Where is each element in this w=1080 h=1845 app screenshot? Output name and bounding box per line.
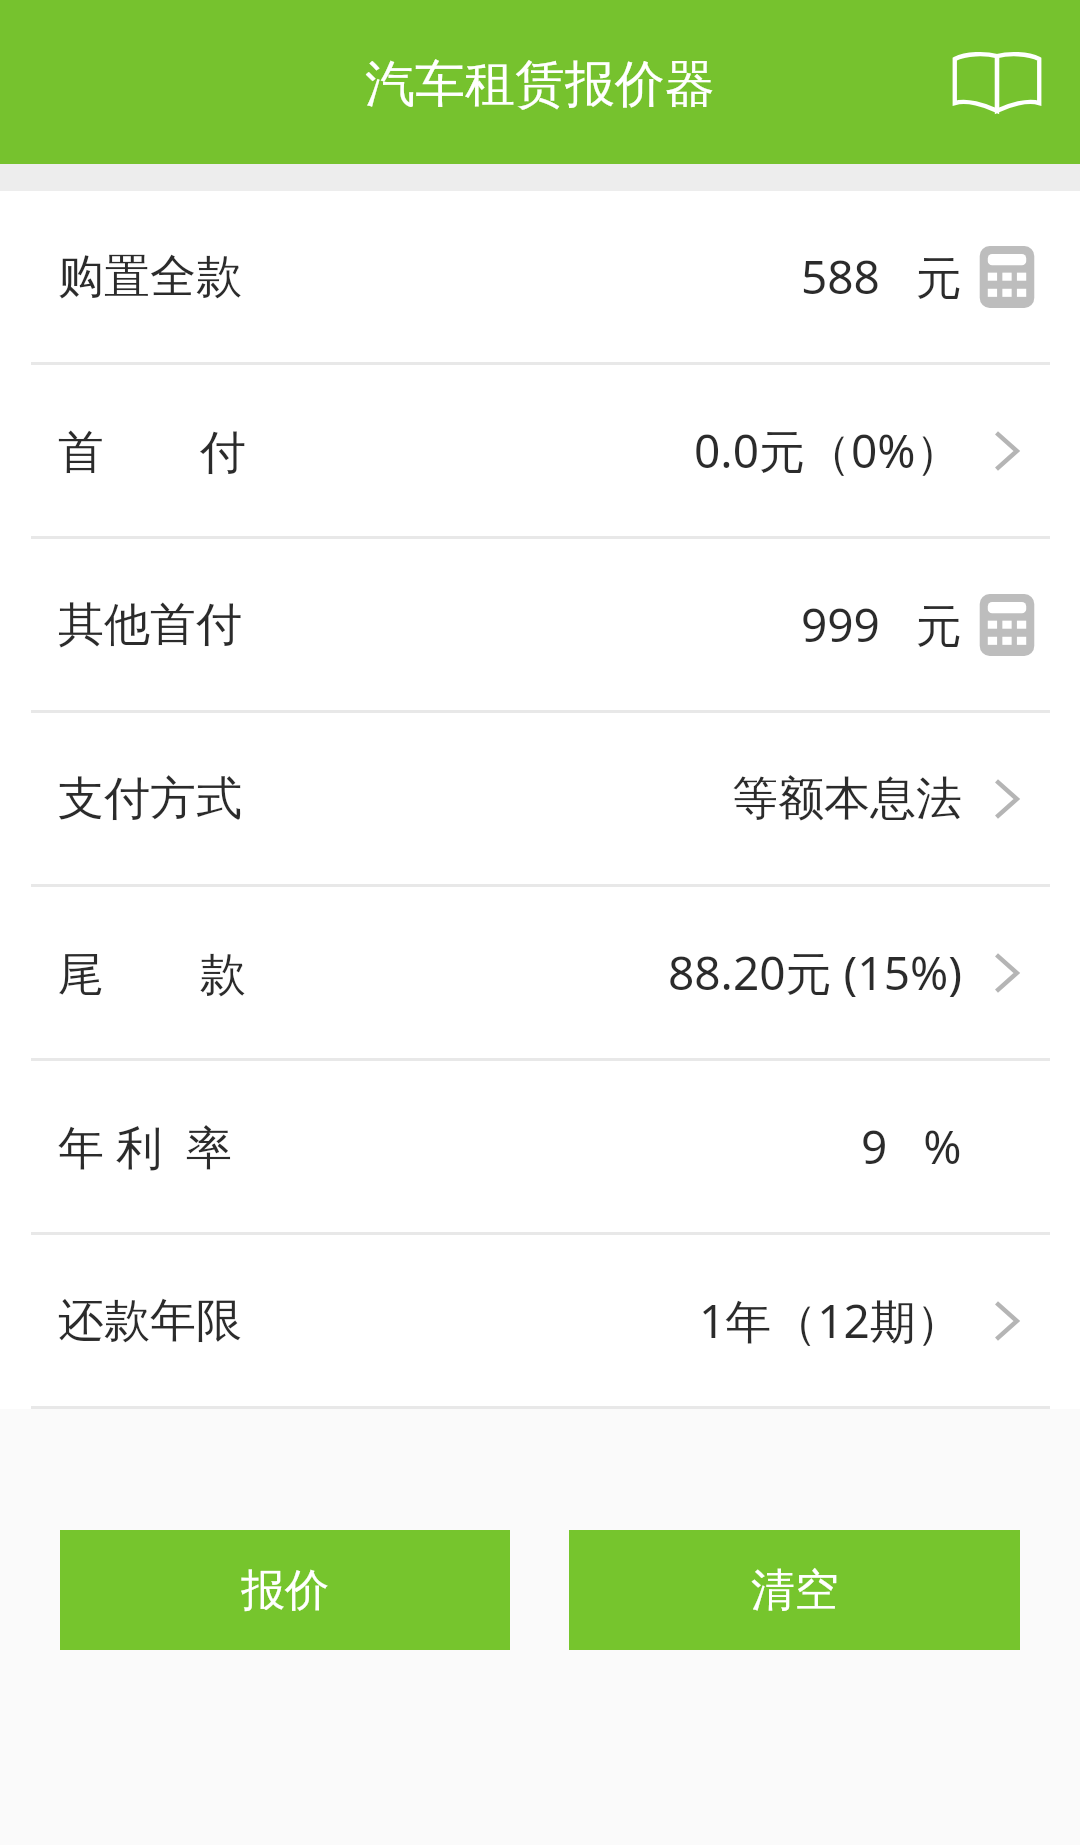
button[interactable]: 购置全款 (0, 191, 1080, 362)
button[interactable]: 还款年限 (0, 1235, 1080, 1406)
button[interactable]: 其他首付 (0, 539, 1080, 710)
button[interactable]: 首 付 (0, 365, 1080, 536)
staticText: 1年（12期） (699, 1289, 962, 1352)
staticText: 9 % (861, 1115, 962, 1178)
staticText: 88.20元 (15%) (668, 941, 962, 1004)
staticText: 年 利 率 (58, 1115, 232, 1178)
button[interactable]: 年 利 率 (0, 1061, 1080, 1232)
button[interactable]: 尾 款 (0, 887, 1080, 1058)
button[interactable]: 清空 (569, 1530, 1020, 1650)
button[interactable]: Help (942, 27, 1052, 137)
staticText: 还款年限 (58, 1292, 242, 1350)
button[interactable]: 支付方式 (0, 713, 1080, 884)
staticText: 999 元 (801, 593, 962, 656)
staticText: 588 元 (801, 245, 962, 308)
staticText: 首 付 (58, 419, 246, 482)
staticText: 报价 (241, 1563, 329, 1618)
staticText: 其他首付 (58, 596, 242, 654)
staticText: 汽车租赁报价器 (365, 53, 715, 116)
staticText: 等额本息法 (732, 770, 962, 828)
staticText: 0.0元（0%） (694, 419, 962, 482)
staticText: 尾 款 (58, 941, 246, 1004)
staticText: 购置全款 (58, 248, 242, 306)
staticText: 清空 (751, 1563, 839, 1618)
button[interactable]: 报价 (60, 1530, 510, 1650)
staticText: 支付方式 (58, 770, 242, 828)
